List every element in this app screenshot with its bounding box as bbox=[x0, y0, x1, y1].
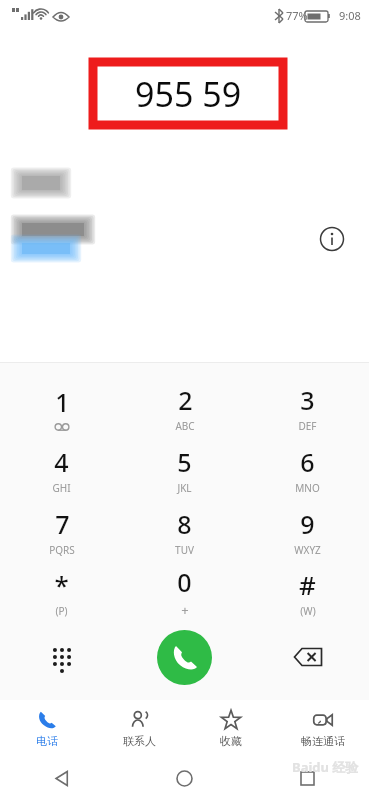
button[interactable]: 3 bbox=[246, 377, 369, 439]
button[interactable]: Call bbox=[157, 630, 212, 685]
staticText: 4 bbox=[54, 445, 69, 479]
staticText: 0 bbox=[177, 565, 192, 599]
button[interactable]: 4 bbox=[0, 439, 123, 501]
staticText: 8 bbox=[177, 507, 192, 541]
staticText: 1 bbox=[55, 385, 70, 419]
staticText: PQRS bbox=[49, 543, 75, 557]
button[interactable]: 9 bbox=[246, 501, 369, 563]
staticText: 5 bbox=[177, 445, 192, 479]
staticText: + bbox=[181, 601, 189, 619]
button[interactable]: 8 bbox=[123, 501, 246, 563]
button[interactable]: Back bbox=[0, 756, 123, 800]
staticText: 7 bbox=[55, 507, 70, 541]
staticText: 电话 bbox=[36, 734, 58, 748]
staticText: JKL bbox=[177, 481, 192, 495]
button[interactable]: 0 bbox=[123, 563, 246, 621]
button[interactable]: Delete bbox=[246, 621, 369, 693]
staticText: WXYZ bbox=[294, 543, 321, 557]
staticText: Baidu 经验 bbox=[292, 758, 359, 776]
button[interactable]: 5 bbox=[123, 439, 246, 501]
staticText: (P) bbox=[55, 604, 68, 618]
button[interactable]: # bbox=[246, 563, 369, 621]
button[interactable]: Information bbox=[315, 222, 349, 256]
staticText: TUV bbox=[175, 543, 194, 557]
button[interactable]: 2 bbox=[123, 377, 246, 439]
button[interactable]: * bbox=[0, 563, 123, 621]
staticText: ABC bbox=[175, 419, 195, 433]
staticText: 联系人 bbox=[123, 734, 156, 748]
button[interactable]: Home bbox=[123, 756, 246, 800]
button[interactable]: Recents bbox=[246, 756, 369, 800]
staticText: * bbox=[54, 567, 69, 602]
staticText: 3 bbox=[300, 383, 315, 417]
button[interactable]: 联系人 bbox=[93, 700, 185, 756]
staticText: GHI bbox=[52, 481, 71, 495]
staticText: # bbox=[299, 567, 316, 602]
staticText: 77% bbox=[286, 8, 308, 23]
staticText: DEF bbox=[298, 419, 317, 433]
staticText: 955 59 bbox=[135, 71, 242, 117]
staticText: 2 bbox=[178, 383, 193, 417]
button[interactable]: 收藏 bbox=[185, 700, 277, 756]
staticText: 9:08 bbox=[339, 8, 361, 23]
button[interactable]: 1 bbox=[0, 377, 123, 439]
button[interactable]: 7 bbox=[0, 501, 123, 563]
button[interactable]: Keypad bbox=[0, 621, 123, 693]
staticText: 9 bbox=[300, 507, 315, 541]
button[interactable]: 畅连通话 bbox=[277, 700, 369, 756]
staticText: 6 bbox=[300, 445, 315, 479]
button[interactable]: 6 bbox=[246, 439, 369, 501]
staticText: 畅连通话 bbox=[301, 734, 345, 748]
staticText: MNO bbox=[295, 481, 320, 495]
staticText: (W) bbox=[300, 604, 316, 618]
staticText: 收藏 bbox=[220, 734, 242, 748]
button[interactable]: 电话 bbox=[0, 700, 93, 756]
